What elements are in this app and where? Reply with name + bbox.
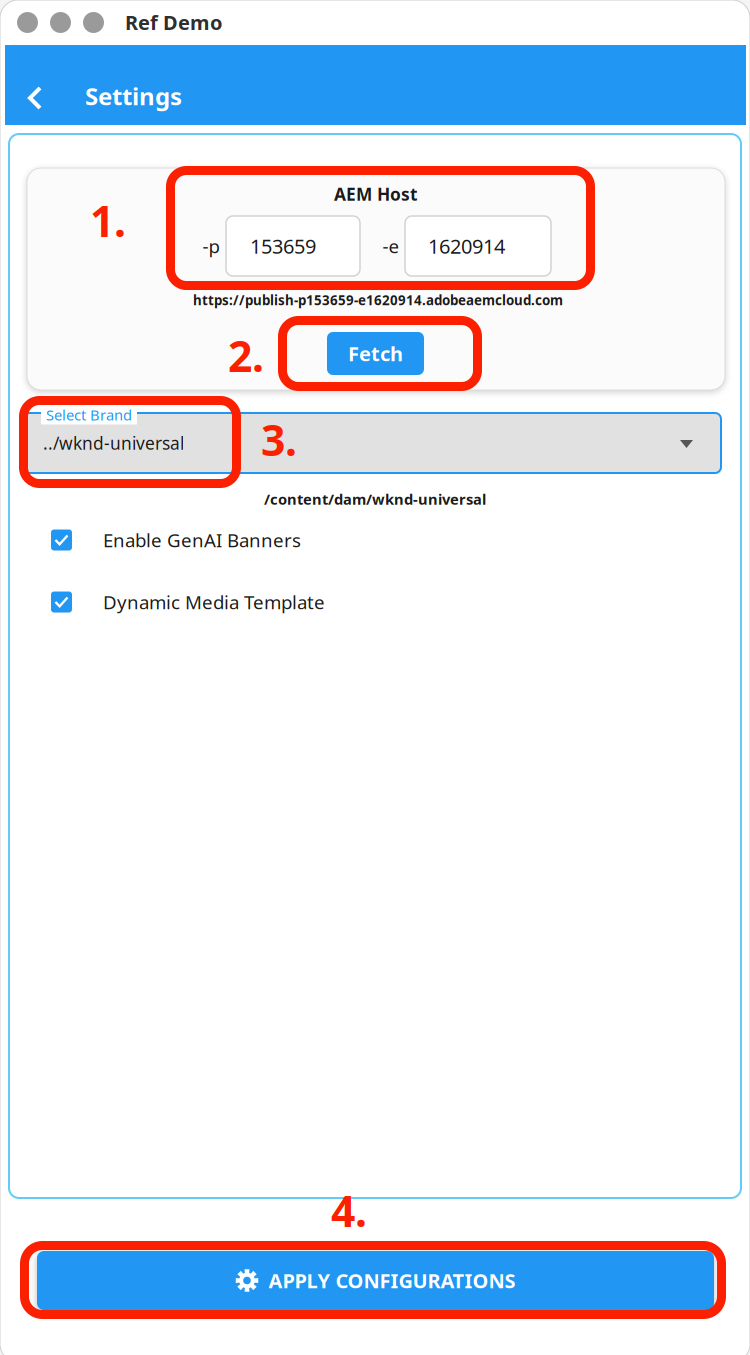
staticText: 1. (90, 192, 126, 249)
button[interactable]: APPLY CONFIGURATIONS (37, 1251, 714, 1310)
staticText: 1620914 (428, 233, 505, 259)
staticText: APPLY CONFIGURATIONS (268, 1267, 515, 1294)
staticText: 4. (331, 1182, 367, 1239)
staticText: 153659 (250, 233, 316, 259)
button[interactable]: Fetch (327, 332, 424, 375)
staticText: Enable GenAI Banners (103, 528, 301, 552)
staticText: -e (382, 234, 399, 258)
staticText: Select Brand (46, 405, 132, 424)
button[interactable]: Back (8, 58, 62, 138)
staticText: 3. (261, 411, 297, 468)
staticText: /content/dam/wknd-universal (264, 489, 486, 509)
staticText: Settings (85, 80, 182, 112)
staticText: https://publish-p153659-e1620914.adobeae… (193, 291, 563, 309)
staticText: 2. (228, 327, 264, 384)
staticText: -p (202, 234, 219, 258)
button[interactable]: Dynamic Media Template (51, 585, 471, 619)
button[interactable]: Enable GenAI Banners (51, 523, 471, 557)
staticText: ../wknd-universal (43, 431, 184, 454)
staticText: Fetch (348, 340, 403, 367)
staticText: Ref Demo (125, 9, 223, 36)
staticText: Dynamic Media Template (103, 590, 325, 614)
button[interactable]: ../wknd-universal (20, 413, 721, 473)
staticText: AEM Host (334, 182, 418, 205)
